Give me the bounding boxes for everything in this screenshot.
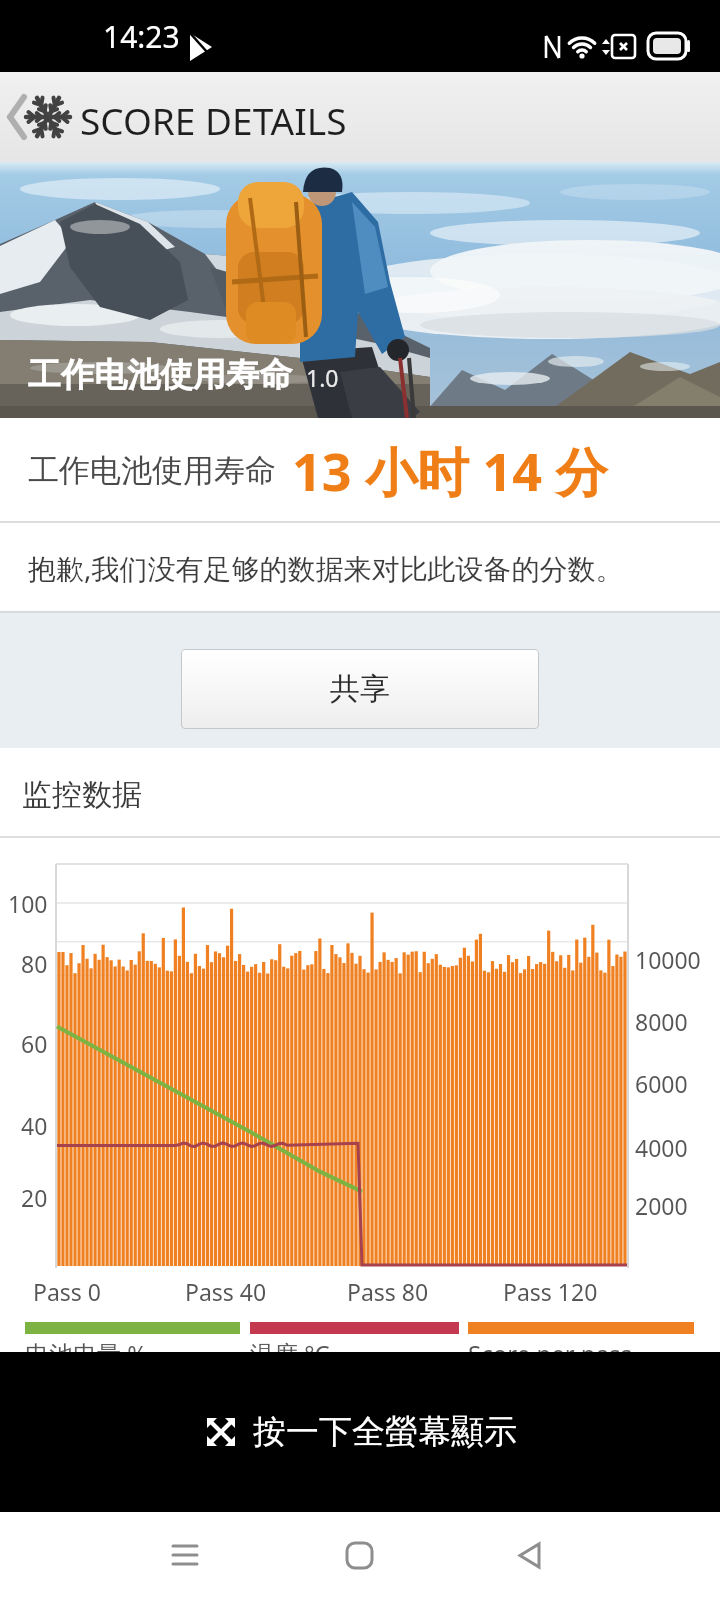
staticText: 抱歉,我们没有足够的数据来对比此设备的分数。: [28, 549, 624, 587]
staticText: 温度 °C: [250, 1337, 330, 1370]
staticText: 1.0: [306, 362, 339, 393]
staticText: 电池电量 %: [25, 1337, 148, 1370]
staticText: 4000: [635, 1132, 688, 1163]
button[interactable]: 按一下全螢幕顯示: [0, 1352, 720, 1512]
button[interactable]: [280, 1512, 440, 1600]
button[interactable]: [106, 1512, 266, 1600]
staticText: 8000: [635, 1006, 688, 1037]
staticText: 共享: [330, 670, 390, 708]
staticText: Pass 0: [33, 1276, 101, 1307]
button[interactable]: [0, 72, 76, 162]
staticText: 60: [21, 1028, 48, 1059]
staticText: 工作电池使用寿命: [28, 451, 276, 490]
staticText: 2000: [635, 1190, 688, 1221]
staticText: 13 小时 14 分: [292, 435, 608, 506]
staticText: 40: [21, 1110, 48, 1141]
button[interactable]: 共享: [181, 649, 539, 729]
staticText: 100: [8, 888, 48, 919]
staticText: SCORE DETAILS: [80, 95, 347, 145]
staticText: Pass 120: [503, 1276, 598, 1307]
staticText: 14:23: [103, 16, 180, 57]
staticText: 20: [21, 1182, 48, 1213]
staticText: Score per pass: [468, 1337, 633, 1370]
staticText: 监控数据: [22, 776, 142, 814]
staticText: 按一下全螢幕顯示: [253, 1411, 517, 1453]
staticText: 6000: [635, 1068, 688, 1099]
staticText: 10000: [635, 944, 701, 975]
button[interactable]: [451, 1512, 611, 1600]
staticText: Pass 40: [185, 1276, 267, 1307]
staticText: 80: [21, 948, 48, 979]
staticText: 工作电池使用寿命: [28, 354, 292, 396]
staticText: Pass 80: [347, 1276, 429, 1307]
